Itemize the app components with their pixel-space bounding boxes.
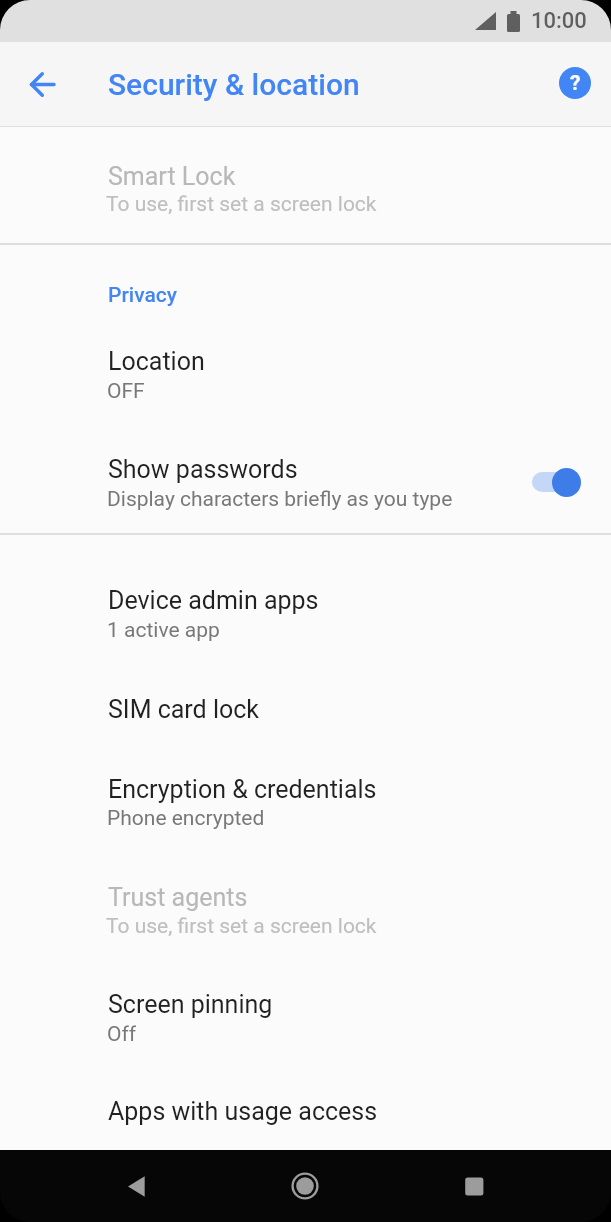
staticText: Show passwords bbox=[108, 455, 298, 484]
button[interactable] bbox=[18, 60, 66, 108]
staticText: OFF bbox=[107, 379, 145, 404]
button[interactable] bbox=[450, 1162, 498, 1210]
button[interactable] bbox=[0, 749, 611, 857]
button[interactable] bbox=[0, 427, 611, 535]
staticText: Screen pinning bbox=[108, 990, 273, 1019]
staticText: Privacy bbox=[108, 283, 178, 308]
staticText: Trust agents bbox=[108, 883, 248, 912]
button[interactable] bbox=[112, 1162, 160, 1210]
button[interactable] bbox=[0, 134, 611, 242]
staticText: SIM card lock bbox=[108, 695, 259, 724]
staticText: Phone encrypted bbox=[107, 806, 265, 831]
button[interactable] bbox=[0, 669, 611, 749]
button[interactable] bbox=[0, 857, 611, 965]
staticText: Apps with usage access bbox=[108, 1097, 378, 1126]
staticText: 10:00 bbox=[531, 8, 587, 34]
staticText: Encryption & credentials bbox=[108, 775, 377, 804]
staticText: Location bbox=[108, 347, 205, 376]
staticText: Device admin apps bbox=[108, 586, 319, 615]
button[interactable]: ? bbox=[559, 67, 591, 99]
button[interactable] bbox=[0, 558, 611, 666]
staticText: Display characters briefly as you type bbox=[107, 487, 453, 512]
staticText: ? bbox=[570, 71, 581, 96]
button[interactable] bbox=[526, 464, 586, 502]
button[interactable] bbox=[0, 319, 611, 427]
button[interactable] bbox=[0, 962, 611, 1070]
staticText: To use, first set a screen lock bbox=[106, 192, 377, 217]
staticText: Off bbox=[107, 1022, 137, 1047]
button[interactable] bbox=[0, 1071, 611, 1150]
button[interactable] bbox=[281, 1162, 329, 1210]
staticText: Smart Lock bbox=[108, 162, 236, 191]
staticText: Security & location bbox=[108, 67, 360, 102]
staticText: To use, first set a screen lock bbox=[106, 914, 377, 939]
staticText: 1 active app bbox=[107, 618, 220, 643]
